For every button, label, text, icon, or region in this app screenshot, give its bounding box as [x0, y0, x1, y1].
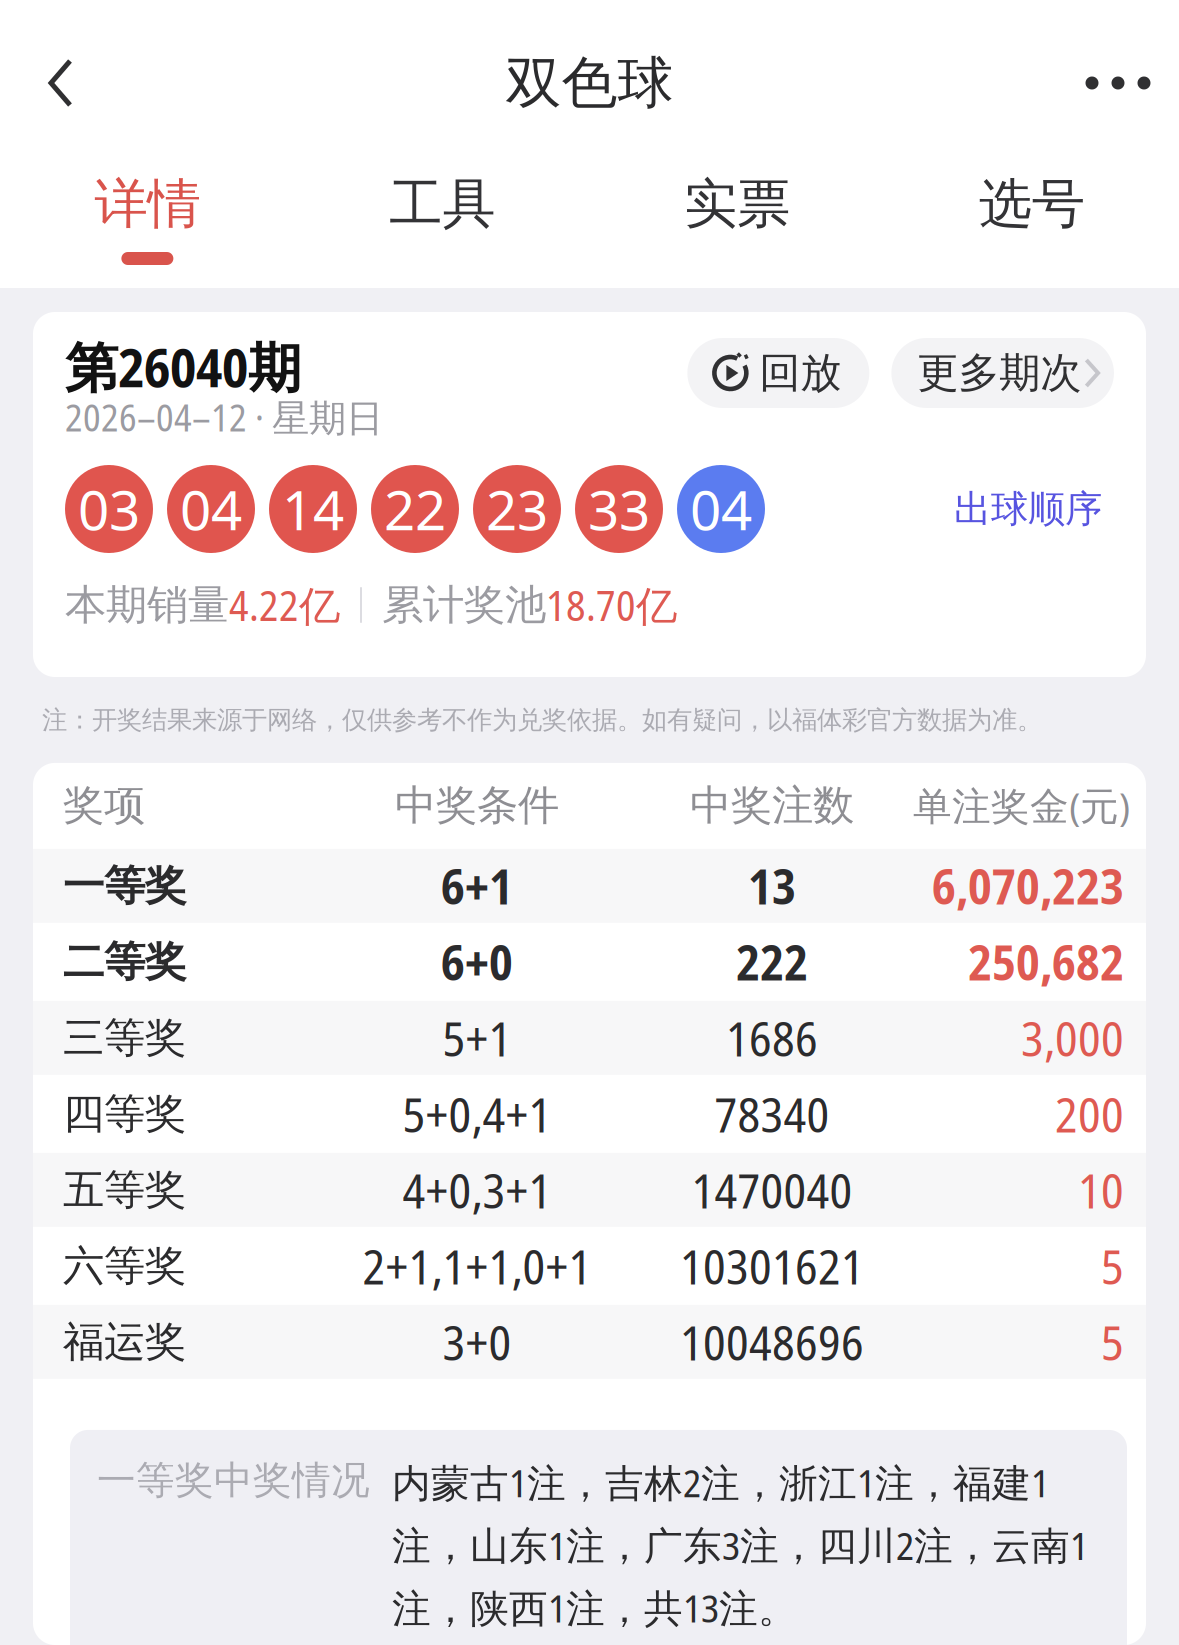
- staticText: 3,000: [1021, 1005, 1124, 1071]
- staticText: 三等奖: [63, 1012, 186, 1064]
- staticText: 更多期次: [917, 347, 1081, 399]
- button[interactable]: 选号: [884, 166, 1179, 288]
- staticText: 18.70亿: [546, 577, 677, 633]
- staticText: 出球顺序: [954, 485, 1102, 532]
- staticText: 实票: [684, 170, 790, 238]
- staticText: 04: [690, 472, 752, 546]
- staticText: 1686: [726, 1005, 818, 1071]
- staticText: 一等奖中奖情况: [97, 1456, 370, 1505]
- staticText: 5: [1101, 1309, 1124, 1375]
- staticText: 10301621: [680, 1233, 864, 1299]
- staticText: 福运奖: [63, 1316, 186, 1368]
- staticText: 第26040期: [65, 330, 301, 403]
- staticText: 04: [180, 472, 242, 546]
- staticText: 奖项: [63, 779, 145, 831]
- button[interactable]: Back: [0, 0, 122, 166]
- staticText: 222: [736, 929, 808, 995]
- staticText: 中奖注数: [690, 779, 854, 831]
- staticText: 78340: [714, 1081, 829, 1147]
- staticText: 5+1: [442, 1005, 511, 1071]
- button[interactable]: 更多期次: [891, 338, 1114, 408]
- staticText: 14: [282, 472, 344, 546]
- button[interactable]: 回放: [687, 338, 869, 408]
- staticText: 13: [748, 853, 796, 919]
- staticText: 工具: [389, 170, 495, 238]
- button[interactable]: 出球顺序: [954, 485, 1102, 532]
- staticText: 1470040: [691, 1157, 852, 1223]
- staticText: 选号: [979, 170, 1085, 238]
- staticText: 2026–04–12 · 星期日: [65, 392, 383, 442]
- staticText: 2+1,1+1,0+1: [362, 1233, 591, 1299]
- staticText: 3+0: [442, 1309, 511, 1375]
- staticText: 六等奖: [63, 1240, 186, 1292]
- staticText: 5+0,4+1: [402, 1081, 551, 1147]
- staticText: 10048696: [680, 1309, 864, 1375]
- staticText: 4.22亿: [229, 577, 340, 633]
- staticText: 单注奖金(元): [913, 779, 1130, 832]
- staticText: 200: [1055, 1081, 1124, 1147]
- staticText: 四等奖: [63, 1088, 186, 1140]
- staticText: 33: [588, 472, 650, 546]
- staticText: 累计奖池: [382, 579, 546, 631]
- staticText: 5: [1101, 1233, 1124, 1299]
- staticText: 一等奖: [63, 860, 186, 912]
- staticText: 03: [78, 472, 140, 546]
- staticText: 五等奖: [63, 1164, 186, 1216]
- staticText: 23: [486, 472, 548, 546]
- staticText: 4+0,3+1: [402, 1157, 551, 1223]
- staticText: 双色球: [505, 48, 673, 118]
- staticText: 回放: [759, 347, 841, 399]
- button[interactable]: More options: [1057, 0, 1179, 166]
- staticText: 6,070,223: [932, 853, 1124, 919]
- staticText: 内蒙古1注，吉林2注，浙江1注，福建1注，山东1注，广东3注，四川2注，云南1注…: [392, 1456, 1088, 1634]
- staticText: 详情: [94, 170, 200, 238]
- button[interactable]: 实票: [589, 166, 884, 288]
- staticText: 本期销量: [65, 579, 229, 631]
- staticText: 6+0: [441, 929, 513, 995]
- staticText: 250,682: [968, 929, 1124, 995]
- button[interactable]: 详情: [0, 166, 295, 288]
- button[interactable]: 工具: [295, 166, 590, 288]
- staticText: 10: [1078, 1157, 1124, 1223]
- staticText: 注：开奖结果来源于网络，仅供参考不作为兑奖依据。如有疑问，以福体彩官方数据为准。: [42, 704, 1042, 736]
- staticText: 中奖条件: [395, 779, 559, 831]
- staticText: 22: [384, 472, 446, 546]
- staticText: 6+1: [441, 853, 513, 919]
- staticText: 二等奖: [63, 936, 186, 988]
